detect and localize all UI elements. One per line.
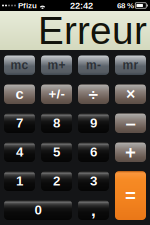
staticText: 3 <box>90 174 97 188</box>
button[interactable]: 2 <box>41 171 72 191</box>
button[interactable]: 8 <box>41 113 72 133</box>
button[interactable]: Plus <box>115 142 146 162</box>
staticText: ÷ <box>88 84 98 104</box>
button[interactable]: 7 <box>4 113 35 133</box>
button[interactable]: Clear <box>4 84 35 104</box>
button[interactable]: Multiply <box>115 84 146 104</box>
staticText: mc <box>10 58 28 72</box>
button[interactable]: 0 <box>4 200 72 220</box>
staticText: 1 <box>16 174 23 188</box>
button[interactable]: Minus <box>115 113 146 133</box>
staticText: 2 <box>53 174 60 188</box>
staticText: 6 <box>90 145 97 159</box>
staticText: c <box>15 86 23 102</box>
button[interactable]: 3 <box>78 171 109 191</box>
button[interactable]: 1 <box>4 171 35 191</box>
staticText: Erreur <box>38 9 147 52</box>
staticText: 5 <box>53 145 60 159</box>
button[interactable]: Divide <box>78 84 109 104</box>
staticText: Pfizu <box>18 1 37 10</box>
staticText: 0 <box>34 203 41 217</box>
button[interactable]: Plus minus <box>41 84 72 104</box>
button[interactable]: 9 <box>78 113 109 133</box>
staticText: 8 <box>53 116 60 130</box>
staticText: – <box>125 113 135 133</box>
button[interactable]: 5 <box>41 142 72 162</box>
button[interactable]: mc <box>4 55 35 75</box>
staticText: 4 <box>16 145 23 159</box>
staticText: 22:42 <box>70 0 93 11</box>
staticText: × <box>126 85 135 103</box>
staticText: 68 % <box>117 1 134 10</box>
staticText: m+ <box>47 58 65 72</box>
staticText: +/- <box>48 87 64 101</box>
staticText: mr <box>122 58 138 72</box>
staticText: 9 <box>90 116 97 130</box>
button[interactable]: m- <box>78 55 109 75</box>
staticText: m- <box>86 58 101 72</box>
staticText: 7 <box>16 116 23 130</box>
button[interactable]: 4 <box>4 142 35 162</box>
staticText: , <box>91 200 96 220</box>
button[interactable]: m+ <box>41 55 72 75</box>
button[interactable]: mr <box>115 55 146 75</box>
staticText: + <box>125 142 136 162</box>
button[interactable]: Equals <box>115 171 146 220</box>
staticText: = <box>125 185 136 206</box>
button[interactable]: Decimal separator <box>78 200 109 220</box>
button[interactable]: 6 <box>78 142 109 162</box>
